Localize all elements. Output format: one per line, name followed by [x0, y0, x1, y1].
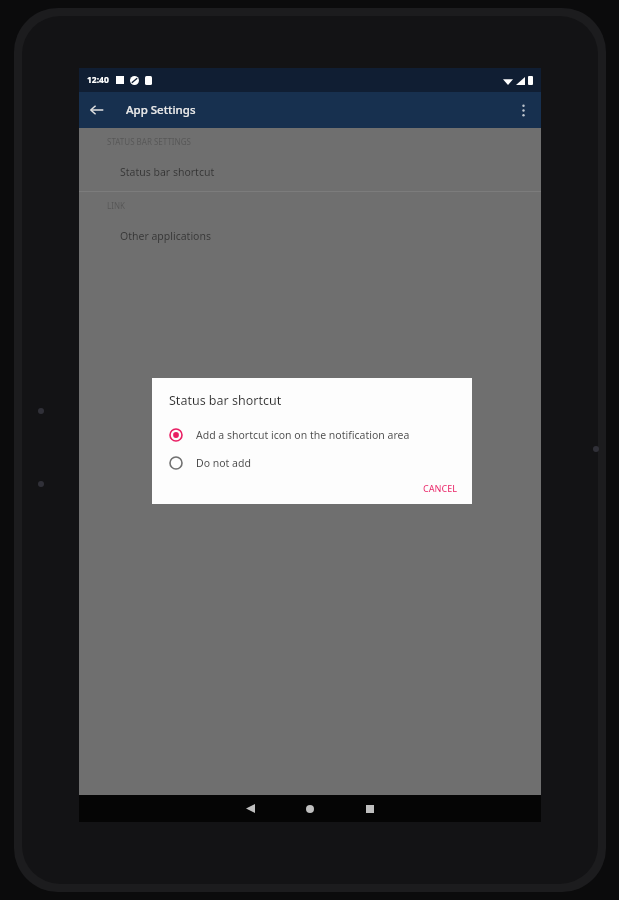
staticText: 12:40: [87, 74, 109, 86]
button[interactable]: Status bar shortcut: [79, 159, 541, 185]
staticText: Status bar shortcut: [169, 392, 282, 409]
button[interactable]: More options: [505, 92, 541, 128]
staticText: App Settings: [126, 102, 196, 118]
button[interactable]: Back: [220, 795, 280, 822]
staticText: Other applications: [120, 229, 211, 243]
staticText: STATUS BAR SETTINGS: [107, 136, 191, 147]
button[interactable]: Home: [280, 795, 340, 822]
button[interactable]: Recent apps: [340, 795, 400, 822]
staticText: Add a shortcut icon on the notification …: [196, 428, 410, 442]
button[interactable]: Back: [79, 92, 115, 128]
staticText: Do not add: [196, 456, 251, 470]
staticText: CANCEL: [423, 482, 458, 494]
button[interactable]: CANCEL: [409, 477, 472, 499]
button[interactable]: Add a shortcut icon on the notification …: [152, 421, 472, 449]
staticText: LINK: [107, 200, 125, 211]
button[interactable]: Other applications: [79, 223, 541, 249]
staticText: Status bar shortcut: [120, 165, 215, 179]
button[interactable]: Do not add: [152, 449, 472, 477]
